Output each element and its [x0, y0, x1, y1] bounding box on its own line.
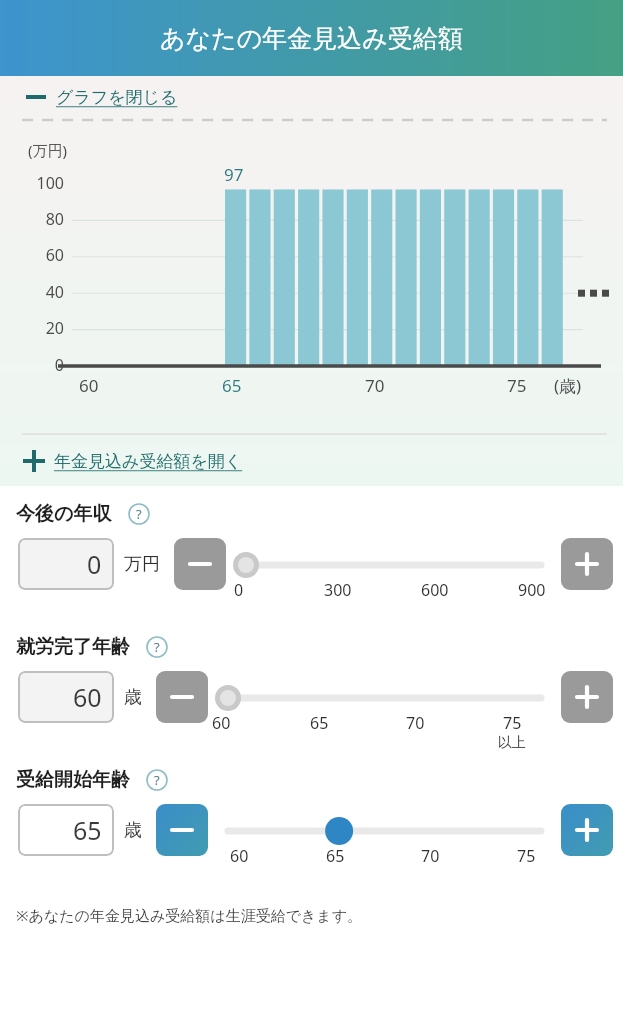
button[interactable]: ヘルプ — [128, 503, 150, 525]
staticText: 60 — [73, 680, 102, 714]
staticText: 65 — [222, 374, 242, 397]
staticText: 今後の年収 — [16, 502, 112, 526]
button[interactable]: グラフを閉じる — [0, 76, 623, 118]
staticText: 60 — [230, 845, 249, 867]
staticText: (歳) — [554, 374, 582, 397]
staticText: 0 — [87, 547, 102, 581]
staticText: 65 — [310, 712, 329, 734]
button[interactable]: ヘルプ — [146, 636, 168, 658]
staticText: 就労完了年齢 — [16, 635, 130, 659]
staticText: 以上 — [498, 734, 526, 752]
staticText: 60 — [212, 712, 231, 734]
button[interactable]: 減らす — [156, 671, 208, 723]
button[interactable]: 減らす — [156, 804, 208, 856]
staticText: グラフを閉じる — [56, 87, 178, 108]
staticText: 0 — [234, 579, 244, 601]
staticText: 70 — [406, 712, 425, 734]
button[interactable] — [214, 684, 555, 712]
staticText: 40 — [14, 281, 64, 303]
button[interactable]: 年金見込み受給額を開く — [0, 436, 623, 486]
staticText: 75 — [503, 712, 522, 734]
staticText: 65 — [326, 845, 345, 867]
button[interactable]: 0 — [18, 538, 114, 590]
staticText: ? — [154, 771, 160, 789]
staticText: 100 — [14, 172, 64, 194]
button[interactable]: 減らす — [174, 538, 226, 590]
staticText: 80 — [14, 208, 64, 230]
staticText: 65 — [73, 813, 102, 847]
staticText: あなたの年金見込み受給額 — [160, 23, 463, 54]
button[interactable]: 増やす — [561, 538, 613, 590]
staticText: 75 — [517, 845, 536, 867]
staticText: 75 — [507, 374, 527, 397]
staticText: 受給開始年齢 — [16, 768, 130, 792]
button[interactable] — [214, 817, 555, 845]
staticText: 97 — [224, 163, 244, 186]
button[interactable] — [232, 551, 555, 579]
button[interactable]: 増やす — [561, 804, 613, 856]
staticText: ※あなたの年金見込み受給額は生涯受給できます。 — [16, 905, 363, 925]
staticText: (万円) — [28, 140, 68, 160]
staticText: 20 — [14, 317, 64, 339]
staticText: 300 — [324, 579, 352, 601]
button[interactable]: 65 — [18, 804, 114, 856]
button[interactable]: 60 — [18, 671, 114, 723]
staticText: 60 — [79, 374, 99, 397]
button[interactable]: ヘルプ — [146, 769, 168, 791]
staticText: 年金見込み受給額を開く — [54, 451, 243, 472]
staticText: 900 — [518, 579, 546, 601]
staticText: 0 — [14, 354, 64, 376]
staticText: ? — [154, 638, 160, 656]
staticText: 歳 — [124, 686, 142, 709]
staticText: 600 — [421, 579, 449, 601]
button[interactable]: 増やす — [561, 671, 613, 723]
staticText: 万円 — [124, 553, 160, 576]
staticText: 70 — [421, 845, 440, 867]
staticText: 60 — [14, 244, 64, 266]
staticText: ? — [136, 505, 142, 523]
staticText: 70 — [365, 374, 385, 397]
staticText: 歳 — [124, 819, 142, 842]
